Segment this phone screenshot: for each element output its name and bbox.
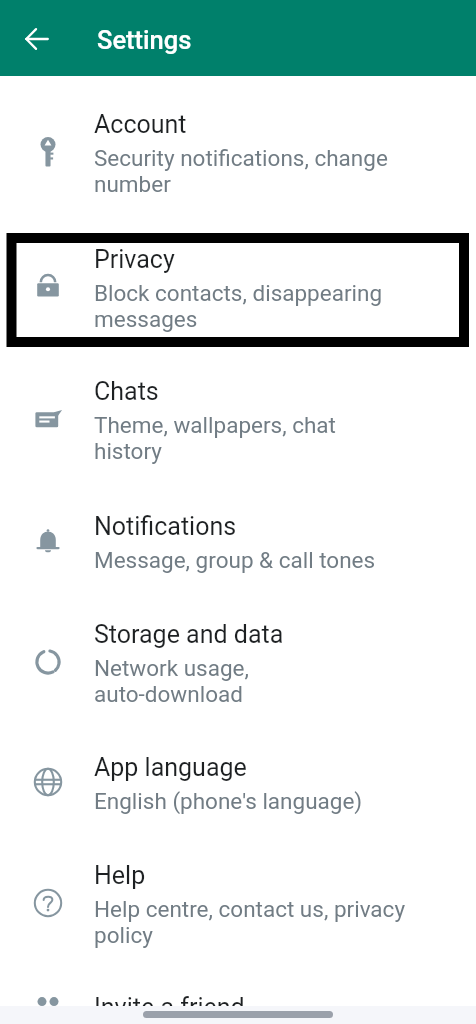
staticText: App language — [94, 753, 247, 782]
staticText: Help centre, contact us, privacy policy — [94, 896, 406, 948]
button[interactable]: Help — [0, 827, 476, 959]
staticText: Help — [94, 861, 146, 890]
staticText: Block contacts, disappearing messages — [94, 280, 383, 332]
staticText: Settings — [97, 25, 192, 55]
button[interactable]: Account — [0, 76, 476, 211]
staticText: Invite a friend — [94, 993, 245, 1022]
button[interactable]: Privacy — [0, 211, 476, 343]
button[interactable]: Invite a friend — [0, 959, 476, 1024]
staticText: Theme, wallpapers, chat history — [94, 412, 336, 464]
button[interactable]: Chats — [0, 343, 476, 478]
staticText: English (phone's language) — [94, 788, 363, 814]
staticText: Notifications — [94, 512, 237, 541]
staticText: Security notifications, change number — [94, 145, 388, 197]
staticText: Message, group & call tones — [94, 547, 376, 573]
button[interactable]: Back — [13, 14, 61, 62]
staticText: Account — [94, 110, 187, 139]
staticText: Network usage, auto-download — [94, 655, 249, 707]
staticText: Storage and data — [94, 620, 284, 649]
staticText: Chats — [94, 377, 159, 406]
button[interactable]: Storage and data — [0, 586, 476, 719]
button[interactable]: Notifications — [0, 478, 476, 586]
button[interactable]: App language — [0, 719, 476, 827]
staticText: Privacy — [94, 245, 175, 274]
